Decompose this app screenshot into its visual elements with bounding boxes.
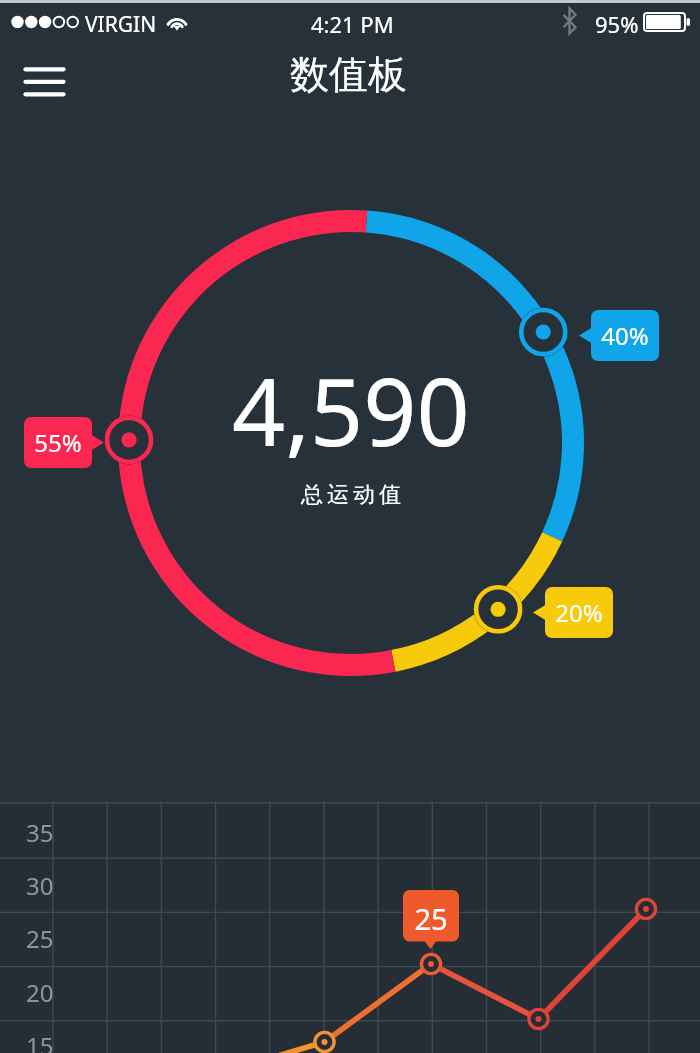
- staticText: 20: [26, 976, 54, 1009]
- staticText: 15: [26, 1029, 54, 1053]
- button[interactable]: 20% segment: [545, 587, 613, 638]
- staticText: 4,590: [232, 347, 470, 474]
- staticText: 95%: [595, 9, 639, 39]
- staticText: 20%: [545, 596, 613, 629]
- button[interactable]: 40% segment: [591, 310, 659, 361]
- button[interactable]: Open navigation menu: [8, 52, 81, 114]
- staticText: 总运动值: [299, 481, 403, 509]
- staticText: 35: [26, 816, 54, 849]
- button[interactable]: 55% segment: [24, 417, 92, 468]
- button[interactable]: Activity donut chart, 4,590 total: [105, 197, 597, 689]
- staticText: 4:21 PM: [311, 9, 394, 39]
- staticText: VIRGIN: [85, 10, 157, 39]
- staticText: 40%: [591, 319, 659, 352]
- button[interactable]: Weekly activity line chart: [0, 801, 700, 1053]
- staticText: 30: [26, 869, 54, 902]
- staticText: 55%: [24, 426, 92, 459]
- staticText: 25: [403, 899, 459, 938]
- button[interactable]: 25: [403, 890, 459, 950]
- staticText: 数值板: [290, 50, 407, 99]
- staticText: 25: [26, 922, 54, 955]
